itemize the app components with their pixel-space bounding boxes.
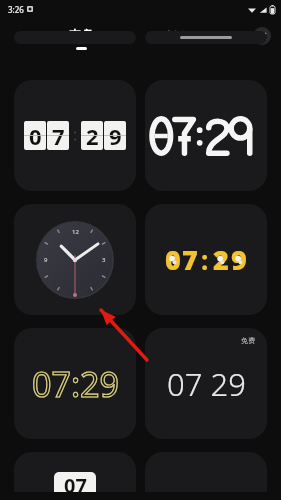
- staticText: 表盘: [68, 27, 94, 43]
- button[interactable]: Yellow emoji watch face: [145, 204, 267, 315]
- staticText: 07:29: [32, 361, 119, 407]
- button[interactable]: Flip clock watch face: [14, 80, 136, 191]
- staticText: 2: [213, 241, 229, 278]
- staticText: 3:26: [8, 4, 24, 15]
- staticText: 9: [44, 256, 48, 264]
- button[interactable]: Thin white watch face: [145, 328, 267, 439]
- staticText: 07:29: [32, 361, 119, 407]
- button[interactable]: [145, 31, 267, 44]
- staticText: 9: [231, 241, 247, 278]
- button[interactable]: Rounded digital watch face: [145, 80, 267, 191]
- staticText: :: [201, 242, 209, 277]
- staticText: 壁纸: [160, 28, 186, 44]
- staticText: 7: [52, 121, 65, 150]
- staticText: 免费: [241, 336, 255, 345]
- staticText: 07: [64, 472, 87, 492]
- staticText: 07 29: [167, 363, 246, 405]
- button[interactable]: 07: [14, 452, 136, 492]
- staticText: 3: [102, 256, 106, 264]
- staticText: 7: [182, 241, 198, 278]
- button[interactable]: Analog watch face: [14, 204, 136, 315]
- staticText: 9: [109, 121, 122, 150]
- staticText: 0: [29, 121, 42, 150]
- staticText: 0: [165, 241, 181, 278]
- button[interactable]: 壁纸: [144, 27, 202, 51]
- button[interactable]: Gold outline watch face: [14, 328, 136, 439]
- button[interactable]: Close: [253, 27, 271, 45]
- staticText: 2: [86, 121, 99, 150]
- button[interactable]: 表盘: [52, 23, 110, 54]
- staticText: 12: [72, 228, 79, 236]
